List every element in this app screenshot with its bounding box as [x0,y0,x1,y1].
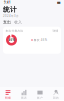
button[interactable]: 支出 [3,20,11,25]
staticText: 账户 [37,96,43,100]
staticText: 支出 [3,20,11,25]
staticText: 餐饮 46% [34,38,47,42]
button[interactable]: 图表 [16,87,32,100]
staticText: 9:41 [4,1,11,4]
staticText: 46% [8,38,14,42]
staticText: 明细 [5,96,11,100]
staticText: 统计 [3,5,17,14]
button[interactable]: 明细 [0,87,16,100]
button[interactable]: 我的 [48,87,64,100]
button[interactable]: 收入 [14,20,22,25]
button[interactable]: 账户 [32,87,48,100]
staticText: 我的 [53,96,59,100]
staticText: 图表 [21,96,27,100]
staticText: 支出分类占比 [5,29,23,32]
staticText: ▮▮▮ [57,1,60,4]
staticText: 详情 [52,29,58,32]
staticText: 2024年3月 [3,14,19,18]
staticText: 收入 [14,20,22,25]
